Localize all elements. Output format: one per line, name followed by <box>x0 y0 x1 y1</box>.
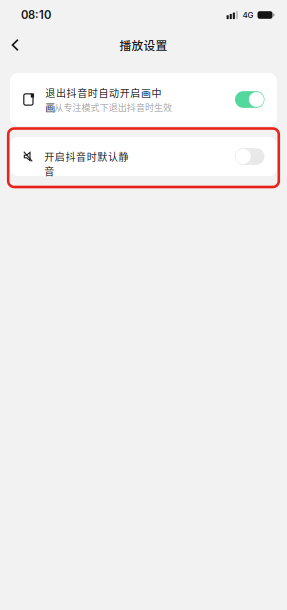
staticText: 08:10 <box>21 8 51 22</box>
button[interactable]: 退出抖音时自动开启画中画 <box>10 73 277 126</box>
staticText: 4G <box>242 10 253 20</box>
staticText: 播放设置 <box>119 36 167 53</box>
button[interactable]: 开启抖音时默认静音 <box>10 137 277 176</box>
button[interactable]: Back <box>3 33 27 57</box>
staticText: 退出抖音时自动开启画中画 <box>45 85 172 100</box>
staticText: 仅从专注模式下退出抖音时生效 <box>45 100 172 113</box>
staticText: 开启抖音时默认静音 <box>44 149 139 164</box>
